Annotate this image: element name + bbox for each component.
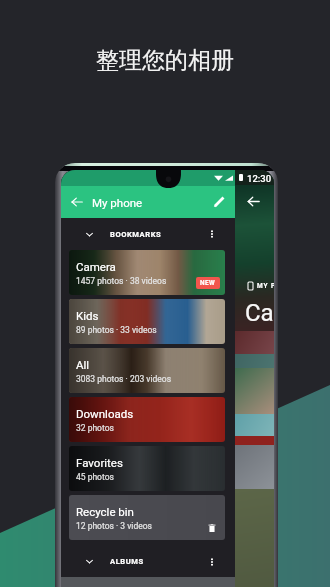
button[interactable]: BOOKMARKS: [61, 218, 235, 250]
staticText: 12 photos · 3 videos: [76, 521, 152, 531]
button[interactable]: Back: [246, 194, 261, 209]
staticText: BOOKMARKS: [110, 230, 162, 239]
staticText: Camera: [76, 260, 116, 273]
button[interactable]: Recycle bin: [69, 495, 225, 540]
button[interactable]: Kids: [69, 299, 225, 344]
staticText: 32 photos: [76, 423, 114, 433]
button[interactable]: All: [69, 348, 225, 393]
staticText: My phone: [92, 196, 143, 209]
button[interactable]: Favorites: [69, 446, 225, 491]
staticText: Favorites: [76, 456, 123, 469]
staticText: 89 photos · 33 videos: [76, 325, 157, 335]
button[interactable]: Downloads: [69, 397, 225, 442]
staticText: NEW: [200, 279, 216, 287]
button[interactable]: Back: [70, 195, 84, 209]
staticText: 3083 photos · 203 videos: [76, 374, 172, 384]
staticText: MY P: [257, 282, 274, 290]
staticText: 整理您的相册: [96, 46, 234, 75]
staticText: 12:30: [247, 173, 272, 184]
staticText: ALBUMS: [110, 557, 144, 566]
staticText: 45 photos: [76, 472, 114, 482]
staticText: Kids: [76, 309, 99, 322]
staticText: Downloads: [76, 407, 134, 420]
staticText: Recycle bin: [76, 505, 134, 518]
staticText: All: [76, 358, 90, 371]
button[interactable]: ALBUMS: [61, 546, 235, 577]
staticText: Ca: [245, 299, 274, 327]
staticText: 1457 photos · 38 videos: [76, 276, 167, 286]
button[interactable]: Edit: [212, 195, 226, 209]
button[interactable]: Camera: [69, 250, 225, 295]
